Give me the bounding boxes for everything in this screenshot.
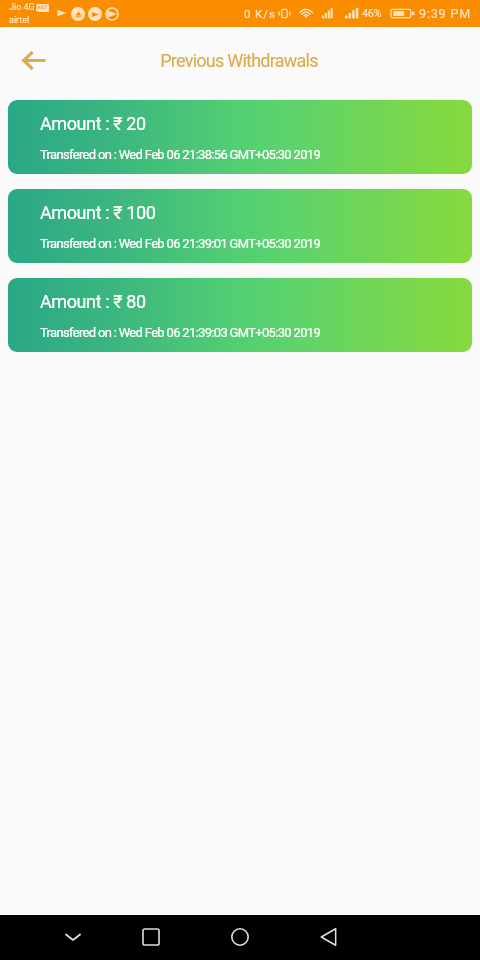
staticText: Transfered on : Wed Feb 06 21:39:01 GMT+… [40,236,321,251]
button[interactable]: Back [11,38,55,82]
staticText: 0 K/s [244,7,276,20]
button[interactable]: Home [220,917,260,957]
staticText: Transfered on : Wed Feb 06 21:39:03 GMT+… [40,325,321,340]
staticText: VoLTE [36,4,49,12]
button[interactable]: Back [309,917,349,957]
staticText: airtel [9,15,30,26]
button[interactable]: Amount : ₹ 80 [8,278,472,352]
staticText: 9:39 PM [419,6,471,21]
staticText: Amount : ₹ 100 [40,202,156,223]
button[interactable]: Hide keyboard [53,917,93,957]
button[interactable]: Amount : ₹ 100 [8,189,472,263]
staticText: Jio 4G [9,2,35,13]
staticText: Amount : ₹ 80 [40,291,146,312]
button[interactable]: Recent apps [131,917,171,957]
staticText: Amount : ₹ 20 [40,113,146,134]
staticText: Previous Withdrawals [160,50,318,71]
staticText: Transfered on : Wed Feb 06 21:38:56 GMT+… [40,147,321,162]
staticText: 46% [362,7,382,20]
button[interactable]: Amount : ₹ 20 [8,100,472,174]
